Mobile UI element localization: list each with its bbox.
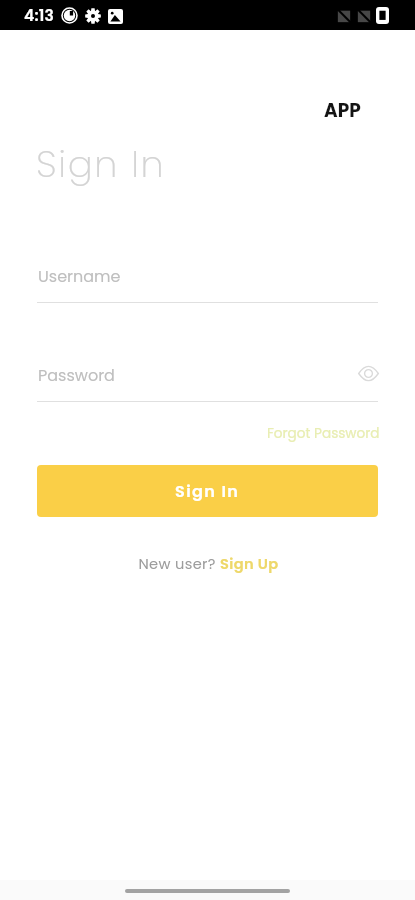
button[interactable]: Password field — [37, 361, 378, 402]
button[interactable]: APP — [306, 96, 378, 126]
staticText: Username — [38, 265, 121, 287]
button[interactable]: Forgot Password — [263, 415, 383, 441]
button[interactable]: Sign In — [37, 465, 378, 517]
button[interactable]: Username field — [37, 262, 378, 303]
staticText: APP — [324, 98, 361, 124]
staticText: 4:13 — [24, 5, 55, 27]
button[interactable]: Show password — [355, 360, 381, 386]
staticText: New user? Sign Up — [138, 554, 279, 574]
staticText: Sign In — [175, 480, 240, 502]
button[interactable]: New user? Sign Up — [131, 547, 286, 575]
staticText: Sign In — [36, 138, 166, 190]
staticText: Password — [38, 364, 115, 386]
staticText: Forgot Password — [267, 424, 380, 443]
